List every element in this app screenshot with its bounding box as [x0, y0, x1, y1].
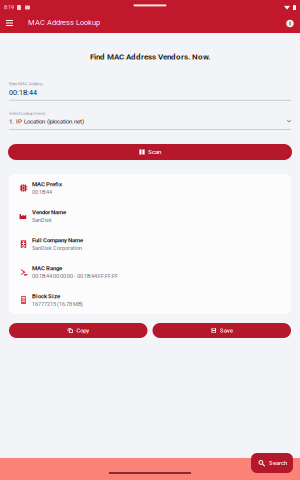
staticText: Vendor Name [32, 209, 66, 216]
staticText: SanDisk Corporation [32, 245, 82, 251]
staticText: SanDisk [32, 217, 52, 223]
staticText: Find MAC Address Vendors. Now. [90, 52, 210, 61]
staticText: 00:1B:44 [9, 88, 37, 97]
staticText: MAC Range [32, 265, 62, 272]
staticText: MAC Prefix [32, 181, 62, 188]
button[interactable]: Search [251, 453, 293, 473]
staticText: Search [269, 460, 287, 466]
staticText: Enter MAC Address [9, 81, 43, 86]
staticText: 00:1B:44:00:00:00 - 00:1B:44:FF:FF:FF [32, 273, 118, 279]
staticText: 1. IP Location (iplocation.net) [9, 118, 84, 125]
button[interactable]: Copy [9, 323, 147, 338]
button[interactable]: Scan [8, 144, 292, 160]
staticText: 16777215 (16.78 MB) [32, 301, 83, 307]
staticText: MAC Address Lookup [28, 18, 100, 27]
button[interactable]: Menu [0, 12, 19, 33]
staticText: 8:19 [4, 4, 14, 11]
staticText: Block Size [32, 293, 60, 300]
staticText: Full Company Name [32, 237, 83, 244]
button[interactable]: Account [280, 11, 300, 34]
button[interactable]: Save [152, 323, 291, 338]
staticText: Select Lookup Server [9, 111, 45, 116]
staticText: Copy [76, 327, 89, 334]
staticText: 00:1B:44 [32, 189, 52, 195]
staticText: Save [220, 327, 233, 334]
staticText: Scan [148, 148, 161, 156]
